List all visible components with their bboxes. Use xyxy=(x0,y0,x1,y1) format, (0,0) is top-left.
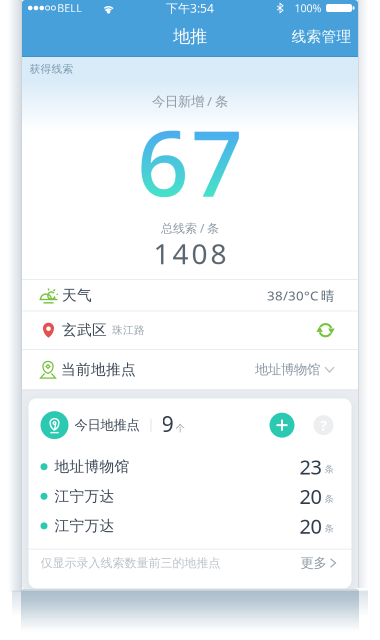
staticText: 仅显示录入线索数量前三的地推点 xyxy=(40,556,220,570)
staticText: ? xyxy=(320,415,327,435)
staticText: 地址博物馆 xyxy=(54,458,129,476)
staticText: 条 xyxy=(324,463,333,475)
staticText: 更多 xyxy=(300,555,326,571)
staticText: 线索管理 xyxy=(291,27,351,45)
button[interactable]: 更多 xyxy=(300,555,335,571)
staticText: 地推 xyxy=(173,26,207,47)
staticText: 下午3:54 xyxy=(166,0,214,16)
staticText: BELL xyxy=(57,1,82,15)
staticText: 江宁万达 xyxy=(54,487,114,505)
staticText: 江宁万达 xyxy=(54,517,114,535)
staticText: 今日新增 / 条 xyxy=(152,92,228,110)
staticText: 获得线索 xyxy=(29,62,73,75)
staticText: 100% xyxy=(294,1,321,15)
staticText: 20 xyxy=(299,483,321,510)
staticText: 条 xyxy=(324,493,333,505)
staticText: 地址博物馆 xyxy=(255,361,320,378)
button[interactable]: 添加地推点 xyxy=(269,413,294,438)
staticText: 1408 xyxy=(153,235,226,272)
staticText: 珠江路 xyxy=(112,324,145,337)
staticText: 个 xyxy=(175,422,184,434)
staticText: 条 xyxy=(324,523,333,534)
staticText: 今日地推点 xyxy=(74,417,139,433)
staticText: 玄武区 xyxy=(62,321,107,339)
staticText: 9 xyxy=(161,409,173,438)
staticText: 38/30°C 晴 xyxy=(267,286,334,304)
button[interactable]: 帮助 xyxy=(313,415,333,435)
staticText: 当前地推点 xyxy=(61,361,136,379)
staticText: 23 xyxy=(299,453,321,480)
button[interactable]: 线索管理 xyxy=(291,27,351,45)
staticText: 总线索 / 条 xyxy=(161,220,219,236)
button[interactable]: 刷新定位 xyxy=(317,322,334,339)
button[interactable]: 当前地推点 xyxy=(22,350,358,389)
staticText: 天气 xyxy=(62,286,92,304)
staticText: 20 xyxy=(299,513,321,539)
